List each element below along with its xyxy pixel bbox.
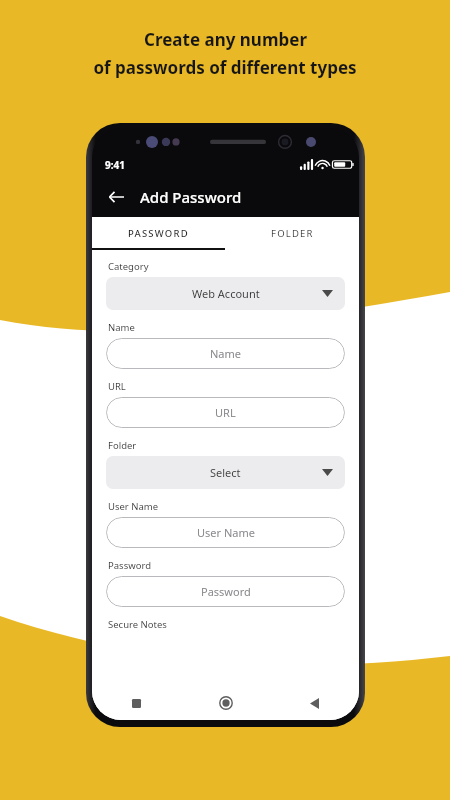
staticText: Password: [201, 584, 251, 599]
staticText: Create any number: [144, 28, 307, 51]
staticText: Name: [108, 321, 135, 334]
staticText: Name: [210, 346, 242, 361]
button[interactable]: Password: [106, 576, 345, 607]
staticText: Select: [210, 465, 241, 480]
button[interactable]: FOLDER: [225, 217, 359, 250]
button[interactable]: Name: [106, 338, 345, 369]
staticText: Web Account: [192, 286, 260, 301]
staticText: 9:41: [105, 158, 125, 172]
button[interactable]: Select: [106, 456, 345, 489]
button[interactable]: Home: [181, 686, 270, 720]
button[interactable]: Back: [100, 181, 132, 213]
button[interactable]: Back: [270, 686, 359, 720]
staticText: FOLDER: [271, 227, 314, 240]
staticText: Add Password: [140, 187, 242, 207]
button[interactable]: PASSWORD: [92, 217, 225, 250]
staticText: Secure Notes: [108, 618, 167, 631]
button[interactable]: Web Account: [106, 277, 345, 310]
staticText: of passwords of different types: [93, 56, 357, 79]
staticText: User Name: [108, 500, 159, 513]
staticText: URL: [108, 380, 126, 393]
staticText: Category: [108, 260, 149, 273]
staticText: Folder: [108, 439, 137, 452]
staticText: URL: [215, 405, 236, 420]
staticText: Password: [108, 559, 151, 572]
button[interactable]: URL: [106, 397, 345, 428]
staticText: PASSWORD: [128, 227, 189, 240]
staticText: User Name: [197, 525, 255, 540]
button[interactable]: Recent apps: [92, 686, 181, 720]
button[interactable]: User Name: [106, 517, 345, 548]
